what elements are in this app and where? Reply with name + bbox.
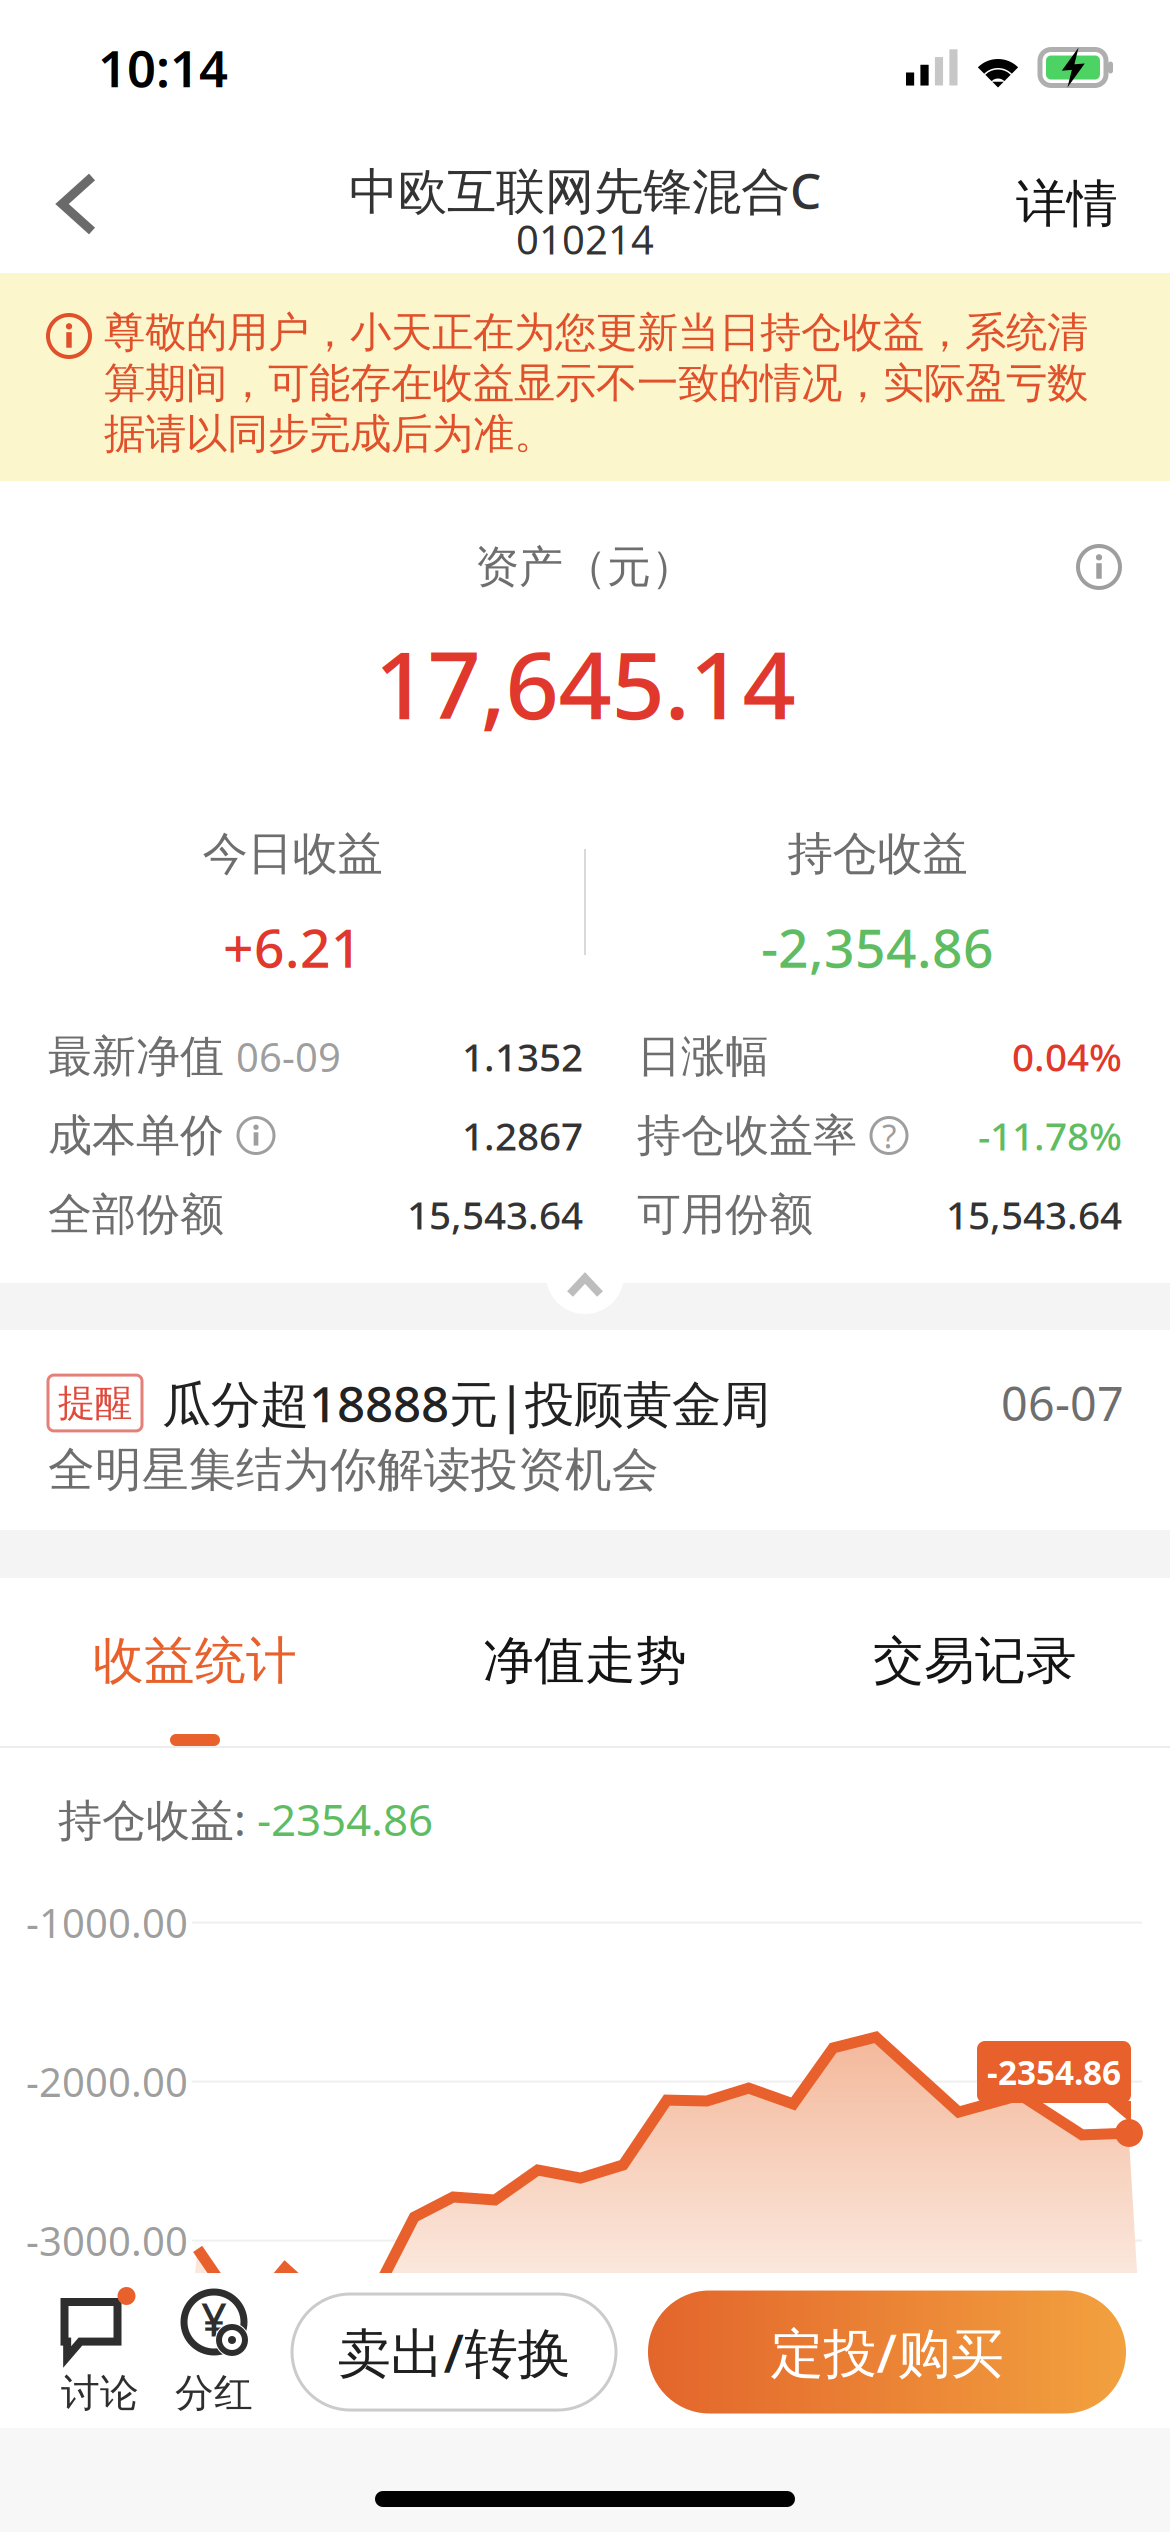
button[interactable]: 收益统计 [0,1578,390,1746]
staticText: 10:14 [98,34,228,101]
staticText: 中欧互联网先锋混合C [349,157,821,223]
button[interactable]: Collapse details [546,1236,624,1314]
button[interactable]: ¥ [145,2287,259,2417]
button[interactable]: 提醒 [0,1330,1170,1530]
staticText: -2000.00 [26,2055,188,2108]
staticText: -2354.86 [257,1790,433,1848]
staticText: 资产（元） [475,540,695,594]
staticText: 提醒 [58,1380,132,1426]
staticText: 详情 [1016,173,1118,235]
staticText: 讨论 [61,2369,139,2417]
staticText: ? [882,1113,896,1158]
staticText: 全明星集结为你解读投资机会 [48,1441,659,1499]
staticText: 15,543.64 [407,1189,583,1240]
staticText: +6.21 [223,912,362,982]
staticText: 最新净值 [48,1029,224,1083]
button[interactable]: 讨论 [55,2287,145,2417]
staticText: 分红 [175,2369,253,2417]
staticText: 成本单价 [48,1108,224,1162]
staticText: -2354.86 [987,2050,1121,2094]
button[interactable]: Back [0,141,136,267]
staticText: ¥ [201,2289,227,2349]
staticText: -3000.00 [26,2214,188,2267]
staticText: 17,645.14 [374,621,795,745]
staticText: -11.78% [978,1110,1122,1161]
staticText: -1000.00 [26,1896,188,1949]
staticText: 定投/购买 [770,2317,1003,2387]
staticText: 收益统计 [93,1630,297,1692]
button[interactable]: 净值走势 [390,1578,780,1746]
staticText: 卖出/转换 [337,2317,570,2387]
staticText: 全部份额 [48,1187,224,1241]
staticText: 瓜分超18888元|投顾黄金周 [162,1370,770,1436]
staticText: 可用份额 [637,1187,813,1241]
staticText: -2,354.86 [761,912,994,982]
staticText: 持仓收益: [58,1790,257,1848]
staticText: 0.04% [1012,1031,1122,1082]
staticText: 持仓收益 [787,826,967,882]
button[interactable]: 卖出/转换 [292,2294,616,2410]
button[interactable]: 定投/购买 [616,2290,1126,2413]
staticText: 净值走势 [483,1630,687,1692]
staticText: 06-07 [1001,1372,1124,1434]
staticText: 1.2867 [462,1110,583,1161]
button[interactable]: 交易记录 [780,1578,1170,1746]
button[interactable]: Asset info [1060,528,1138,606]
staticText: 日涨幅 [637,1029,769,1083]
staticText: 今日收益 [202,826,382,882]
staticText: 15,543.64 [946,1189,1122,1240]
staticText: 持仓收益率 [637,1108,857,1162]
staticText: 06-09 [236,1030,341,1083]
staticText: 交易记录 [873,1630,1077,1692]
button[interactable]: 详情 [986,141,1170,267]
staticText: 010214 [516,212,654,265]
staticText: 1.1352 [462,1031,583,1082]
staticText: 尊敬的用户，小天正在为您更新当日持仓收益，系统清算期间，可能存在收益显示不一致的… [104,307,1088,459]
